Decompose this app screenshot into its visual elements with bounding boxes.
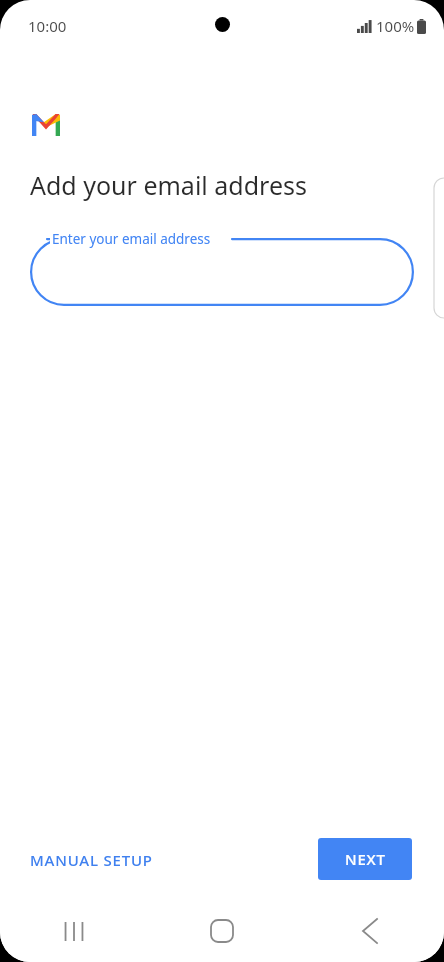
- staticText: Enter your email address: [52, 230, 211, 248]
- button[interactable]: Home: [148, 900, 296, 962]
- staticText: 100%: [376, 16, 415, 36]
- button[interactable]: Back: [296, 900, 444, 962]
- staticText: NEXT: [345, 849, 386, 869]
- button[interactable]: Enter your email address: [30, 238, 414, 306]
- button[interactable]: NEXT: [318, 838, 412, 880]
- button[interactable]: MANUAL SETUP: [16, 840, 167, 880]
- staticText: Add your email address: [30, 168, 307, 202]
- button[interactable]: Recent apps: [0, 900, 148, 962]
- staticText: 10:00: [28, 16, 67, 36]
- staticText: MANUAL SETUP: [30, 850, 153, 870]
